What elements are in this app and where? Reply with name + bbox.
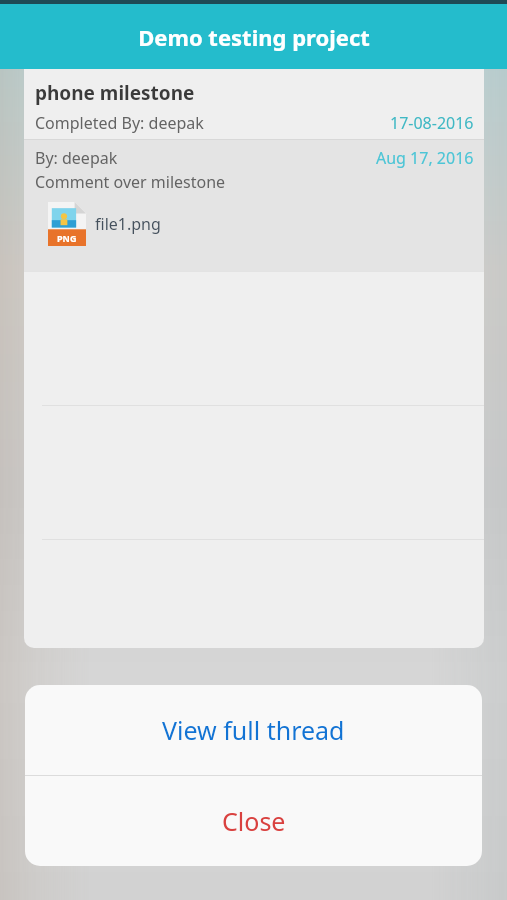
button[interactable]: Close bbox=[25, 776, 482, 866]
staticText: Completed By: deepak bbox=[35, 112, 204, 134]
staticText: Close bbox=[222, 804, 286, 838]
button[interactable]: View full thread bbox=[25, 685, 482, 775]
staticText: file1.png bbox=[95, 213, 161, 235]
staticText: PNG bbox=[57, 232, 77, 244]
staticText: phone milestone bbox=[35, 80, 195, 106]
staticText: Demo testing project bbox=[138, 22, 370, 52]
other: PNG attachment file1.png bbox=[48, 202, 86, 246]
staticText: By: deepak bbox=[35, 147, 118, 169]
staticText: View full thread bbox=[162, 713, 345, 747]
staticText: Comment over milestone bbox=[35, 171, 226, 193]
staticText: 17-08-2016 bbox=[390, 112, 474, 134]
button[interactable]: PNG attachment file1.png bbox=[48, 202, 167, 246]
staticText: Aug 17, 2016 bbox=[376, 147, 474, 169]
